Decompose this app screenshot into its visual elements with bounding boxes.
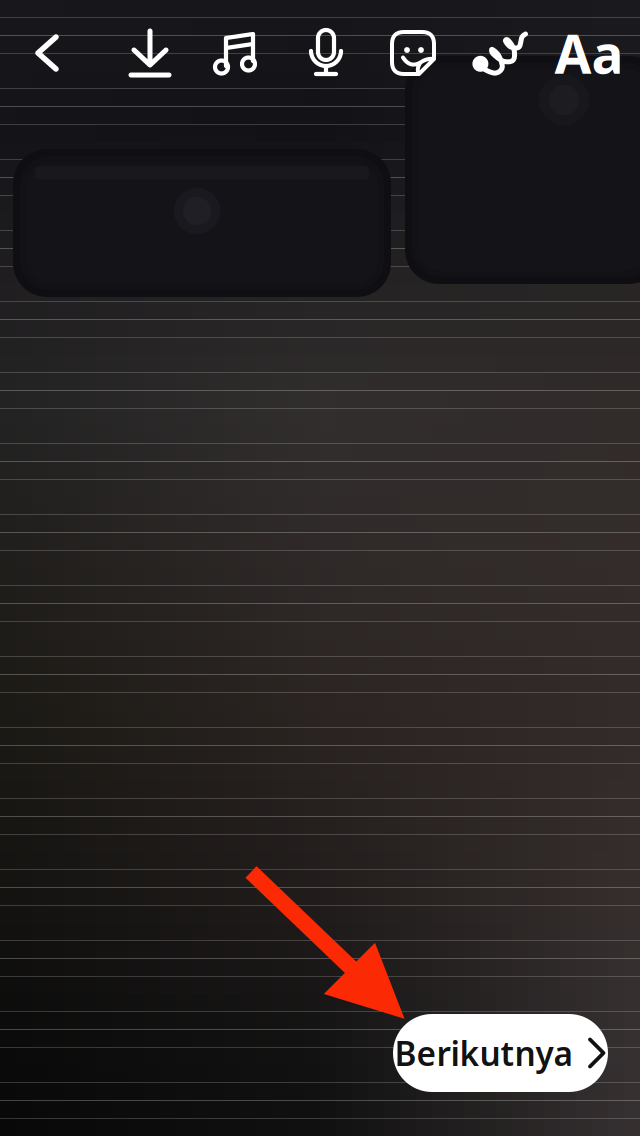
button[interactable]: Music <box>203 21 267 85</box>
staticText: Aa <box>554 18 623 88</box>
staticText: Berikutnya <box>394 1031 573 1075</box>
button[interactable]: Draw <box>470 21 534 85</box>
button[interactable]: Berikutnya <box>393 1014 608 1092</box>
button[interactable]: Voice message <box>294 21 358 85</box>
button[interactable]: Text <box>557 21 621 85</box>
button[interactable]: Back <box>15 21 79 85</box>
button[interactable]: Stickers <box>381 21 445 85</box>
button[interactable]: Save <box>118 21 182 85</box>
